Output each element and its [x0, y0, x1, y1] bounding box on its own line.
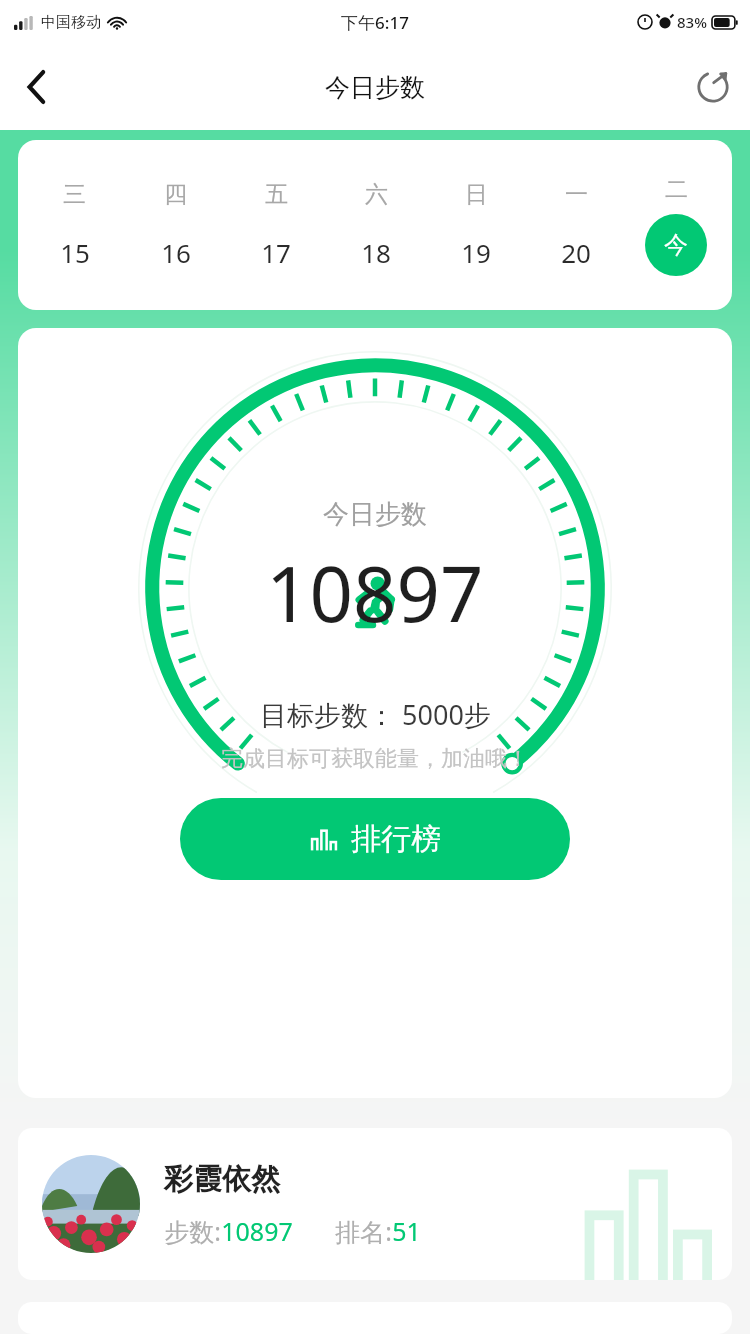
- staticText: 步数:: [164, 1214, 221, 1248]
- button[interactable]: Refresh: [676, 50, 750, 124]
- button[interactable]: 六: [326, 140, 426, 310]
- staticText: 四: [164, 180, 187, 209]
- staticText: 完成目标可获取能量，加油哦！: [221, 745, 529, 773]
- staticText: 六: [365, 180, 388, 209]
- staticText: 19: [461, 235, 491, 270]
- staticText: 16: [161, 235, 191, 270]
- staticText: 目标步数： 5000步: [260, 696, 491, 733]
- staticText: 五: [265, 180, 288, 209]
- button[interactable]: 五: [226, 140, 326, 310]
- staticText: 今日步数: [325, 72, 425, 103]
- staticText: 今: [664, 230, 688, 260]
- staticText: 51: [392, 1214, 421, 1248]
- button[interactable]: 四: [125, 140, 226, 310]
- button[interactable]: 三: [24, 140, 125, 310]
- staticText: 17: [261, 235, 291, 270]
- staticText: 排行榜: [351, 820, 441, 858]
- staticText: 今日步数: [323, 498, 427, 531]
- button[interactable]: 一: [526, 140, 626, 310]
- staticText: 排名:: [335, 1214, 392, 1248]
- button[interactable]: 日: [426, 140, 526, 310]
- button[interactable]: 二: [626, 140, 726, 310]
- staticText: 15: [60, 235, 90, 270]
- staticText: 83%: [677, 12, 707, 32]
- staticText: 下午6:17: [341, 11, 409, 34]
- staticText: 三: [63, 180, 86, 209]
- staticText: 一: [565, 180, 588, 209]
- staticText: 日: [465, 180, 488, 209]
- button[interactable]: 彩霞依然: [18, 1128, 732, 1280]
- staticText: 二: [665, 175, 688, 204]
- staticText: 20: [561, 235, 591, 270]
- staticText: 10897: [221, 1214, 293, 1248]
- button[interactable]: Back: [0, 50, 74, 124]
- staticText: 10897: [266, 541, 484, 645]
- staticText: 中国移动: [41, 13, 101, 32]
- staticText: 18: [361, 235, 391, 270]
- staticText: 彩霞依然: [164, 1161, 280, 1198]
- button[interactable]: 排行榜: [180, 798, 570, 880]
